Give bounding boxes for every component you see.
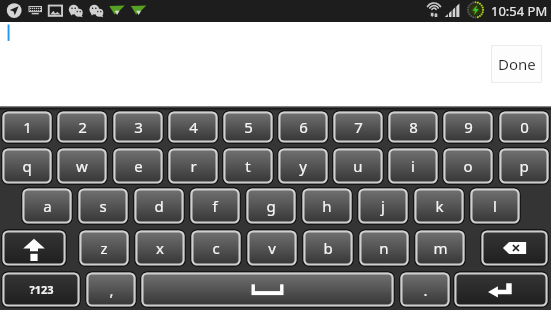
- staticText: c: [212, 238, 220, 258]
- button[interactable]: 9: [442, 110, 494, 144]
- button[interactable]: k: [413, 187, 465, 225]
- staticText: Done: [498, 54, 536, 74]
- button[interactable]: Shift: [1, 229, 67, 267]
- staticText: 5: [244, 117, 253, 137]
- button[interactable]: 1: [1, 110, 53, 144]
- staticText: m: [433, 238, 448, 258]
- button[interactable]: Enter: [453, 271, 549, 308]
- button[interactable]: v: [246, 229, 298, 267]
- button[interactable]: b: [302, 229, 354, 267]
- staticText: o: [463, 156, 473, 176]
- staticText: 9: [464, 117, 473, 137]
- button[interactable]: t: [222, 147, 274, 185]
- staticText: .: [423, 280, 428, 300]
- button[interactable]: x: [134, 229, 186, 267]
- button[interactable]: 6: [277, 110, 329, 144]
- button[interactable]: .: [399, 271, 451, 308]
- staticText: 4: [189, 117, 198, 137]
- staticText: e: [134, 156, 143, 176]
- staticText: u: [353, 156, 363, 176]
- staticText: p: [519, 156, 529, 176]
- staticText: f: [212, 196, 218, 216]
- button[interactable]: w: [56, 147, 108, 185]
- button[interactable]: ?123: [1, 271, 81, 308]
- button[interactable]: z: [78, 229, 130, 267]
- staticText: 6: [299, 117, 308, 137]
- button[interactable]: h: [301, 187, 353, 225]
- button[interactable]: o: [442, 147, 494, 185]
- button[interactable]: p: [498, 147, 550, 185]
- button[interactable]: q: [1, 147, 53, 185]
- staticText: r: [190, 156, 197, 176]
- button[interactable]: 7: [332, 110, 384, 144]
- staticText: i: [411, 156, 415, 176]
- staticText: 2: [78, 117, 87, 137]
- staticText: 7: [354, 117, 363, 137]
- staticText: s: [99, 196, 107, 216]
- button[interactable]: n: [358, 229, 410, 267]
- staticText: q: [22, 156, 32, 176]
- staticText: k: [435, 196, 444, 216]
- staticText: z: [100, 238, 108, 258]
- staticText: l: [493, 196, 497, 216]
- staticText: b: [323, 238, 333, 258]
- button[interactable]: Space: [140, 271, 395, 308]
- staticText: x: [156, 238, 164, 258]
- staticText: ?123: [29, 282, 54, 297]
- staticText: h: [322, 196, 332, 216]
- staticText: v: [268, 238, 276, 258]
- button[interactable]: m: [414, 229, 466, 267]
- staticText: g: [266, 196, 276, 216]
- button[interactable]: d: [133, 187, 185, 225]
- button[interactable]: i: [387, 147, 439, 185]
- button[interactable]: u: [332, 147, 384, 185]
- staticText: d: [154, 196, 164, 216]
- button[interactable]: g: [245, 187, 297, 225]
- button[interactable]: 4: [167, 110, 219, 144]
- staticText: y: [299, 156, 307, 176]
- button[interactable]: 8: [387, 110, 439, 144]
- button[interactable]: e: [112, 147, 164, 185]
- button[interactable]: s: [77, 187, 129, 225]
- button[interactable]: ,: [85, 271, 137, 308]
- button[interactable]: 2: [56, 110, 108, 144]
- staticText: w: [76, 156, 88, 176]
- staticText: 0: [520, 117, 529, 137]
- staticText: n: [379, 238, 389, 258]
- staticText: 8: [409, 117, 418, 137]
- button[interactable]: c: [190, 229, 242, 267]
- staticText: ,: [109, 280, 114, 300]
- button[interactable]: r: [167, 147, 219, 185]
- button[interactable]: Done: [491, 45, 542, 83]
- button[interactable]: a: [21, 187, 73, 225]
- button[interactable]: y: [277, 147, 329, 185]
- staticText: a: [43, 196, 52, 216]
- staticText: 1: [23, 117, 32, 137]
- button[interactable]: f: [189, 187, 241, 225]
- staticText: t: [245, 156, 251, 176]
- button[interactable]: Backspace: [480, 229, 549, 267]
- button[interactable]: l: [469, 187, 521, 225]
- button[interactable]: 5: [222, 110, 274, 144]
- staticText: 10:54 PM: [491, 2, 548, 20]
- button[interactable]: j: [357, 187, 409, 225]
- staticText: j: [381, 196, 385, 216]
- button[interactable]: 3: [112, 110, 164, 144]
- button[interactable]: 0: [498, 110, 550, 144]
- staticText: 3: [134, 117, 143, 137]
